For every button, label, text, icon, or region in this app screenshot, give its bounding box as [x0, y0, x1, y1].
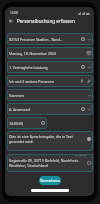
button[interactable]: Bearbeiten [86, 78, 92, 84]
button[interactable]: Montag, 18. November 2024 [7, 47, 93, 59]
button[interactable]: Standort anzeigen [86, 160, 92, 166]
button[interactable]: Kommen [7, 89, 93, 101]
button[interactable]: Zurück [7, 17, 15, 25]
button[interactable]: Dies ist eine Spracheingabe, die in Text… [7, 131, 93, 151]
staticText: A. Anwesend [9, 107, 31, 112]
button[interactable]: Ich und 2 weitere Personen [7, 75, 93, 87]
button[interactable]: 82153 Preussen Stadion - Nord... [7, 33, 93, 45]
staticText: Übernehmen [40, 179, 60, 183]
button[interactable]: 1. Vertragliche Leistung [7, 61, 93, 73]
staticText: Dies ist eine Spracheingabe, die in Text… [9, 134, 81, 144]
button[interactable]: A. Anwesend [7, 103, 93, 115]
button[interactable]: Auswahl öffnen [87, 107, 92, 112]
staticText: Kommen [9, 93, 24, 98]
staticText: Ich und 2 weitere Personen [9, 79, 54, 84]
button[interactable]: Löschen [80, 36, 86, 42]
button[interactable]: Löschen [40, 120, 46, 126]
staticText: STANDORT [75, 154, 87, 157]
button[interactable]: Übernehmen [39, 176, 61, 185]
button[interactable]: Auswahl öffnen [87, 37, 92, 42]
button[interactable]: Löschen [80, 106, 86, 112]
button[interactable]: STANDORT [7, 154, 93, 172]
staticText: 1. Vertragliche Leistung [9, 65, 48, 70]
staticText: 82153 Preussen Stadion - Nord... [9, 37, 63, 42]
button[interactable]: 14:00:00 [7, 117, 47, 129]
staticText: Vogtstraße 85, 33719 Bielefeld, Nordrhei… [9, 158, 79, 168]
button[interactable]: Auswahl öffnen [87, 65, 92, 70]
staticText: 14:00:00 [9, 121, 23, 126]
staticText: 14:00 [10, 11, 19, 15]
button[interactable]: Datum wählen [86, 50, 92, 56]
staticText: Personalbuchung erfassen [17, 18, 75, 24]
button[interactable]: Spracheingabe [86, 136, 92, 142]
button[interactable]: Löschen [80, 64, 86, 70]
button[interactable]: Auswahl öffnen [87, 93, 92, 98]
staticText: Montag, 18. November 2024 [9, 51, 56, 56]
button[interactable]: Mikrofon [79, 78, 85, 84]
